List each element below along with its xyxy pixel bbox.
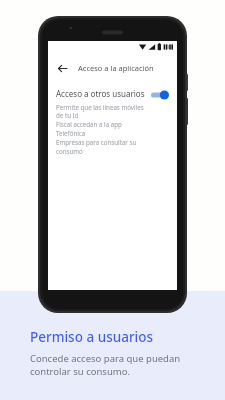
staticText: Permite que las líneas móviles de tu Id … <box>56 103 146 156</box>
button[interactable]: Acceso a otros usuarios toggle <box>150 89 170 101</box>
staticText: Concede acceso para que puedan controlar… <box>30 352 181 378</box>
staticText: Acceso a la aplicación <box>78 63 154 73</box>
staticText: Permiso a usuarios <box>30 328 154 346</box>
button[interactable]: Back <box>55 61 69 75</box>
button[interactable]: Acceso a otros usuarios <box>48 88 177 156</box>
staticText: Acceso a otros usuarios <box>56 88 145 99</box>
